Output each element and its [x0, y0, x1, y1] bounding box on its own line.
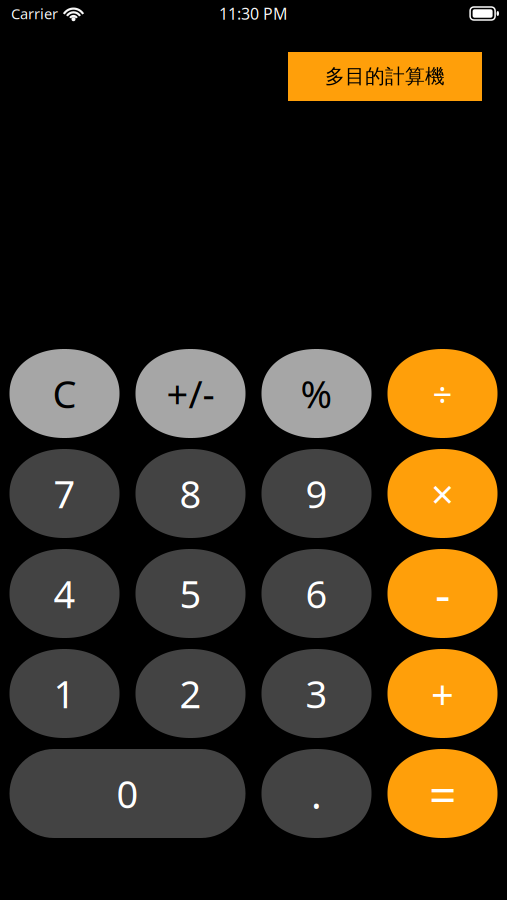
- staticText: 7: [53, 468, 75, 519]
- staticText: ÷: [432, 370, 452, 417]
- staticText: ×: [431, 466, 454, 521]
- staticText: -: [435, 561, 450, 626]
- staticText: Carrier: [11, 3, 58, 23]
- button[interactable]: %: [261, 349, 371, 438]
- staticText: 2: [179, 668, 201, 719]
- button[interactable]: 3: [261, 649, 371, 738]
- staticText: .: [311, 766, 322, 821]
- staticText: 5: [179, 568, 201, 619]
- staticText: 9: [305, 468, 327, 519]
- staticText: 11:30 PM: [219, 3, 288, 24]
- staticText: C: [52, 368, 76, 419]
- button[interactable]: 5: [135, 549, 245, 638]
- button[interactable]: -: [387, 549, 497, 638]
- button[interactable]: =: [387, 749, 497, 838]
- button[interactable]: 2: [135, 649, 245, 738]
- button[interactable]: 9: [261, 449, 371, 538]
- staticText: 1: [53, 668, 75, 719]
- button[interactable]: +: [387, 649, 497, 738]
- button[interactable]: .: [261, 749, 371, 838]
- staticText: +/-: [166, 368, 214, 419]
- button[interactable]: ×: [387, 449, 497, 538]
- button[interactable]: 4: [9, 549, 119, 638]
- button[interactable]: C: [9, 349, 119, 438]
- button[interactable]: 多目的計算機: [288, 52, 482, 101]
- staticText: 3: [305, 668, 327, 719]
- staticText: %: [300, 368, 332, 419]
- button[interactable]: +/-: [135, 349, 245, 438]
- button[interactable]: 7: [9, 449, 119, 538]
- button[interactable]: 6: [261, 549, 371, 638]
- staticText: 8: [179, 468, 201, 519]
- staticText: 多目的計算機: [325, 64, 445, 89]
- button[interactable]: 1: [9, 649, 119, 738]
- button[interactable]: 0: [9, 749, 245, 838]
- staticText: 4: [53, 568, 75, 619]
- staticText: 0: [116, 768, 138, 819]
- staticText: =: [429, 761, 456, 826]
- staticText: 6: [305, 568, 327, 619]
- button[interactable]: ÷: [387, 349, 497, 438]
- button[interactable]: 8: [135, 449, 245, 538]
- staticText: +: [431, 666, 454, 721]
